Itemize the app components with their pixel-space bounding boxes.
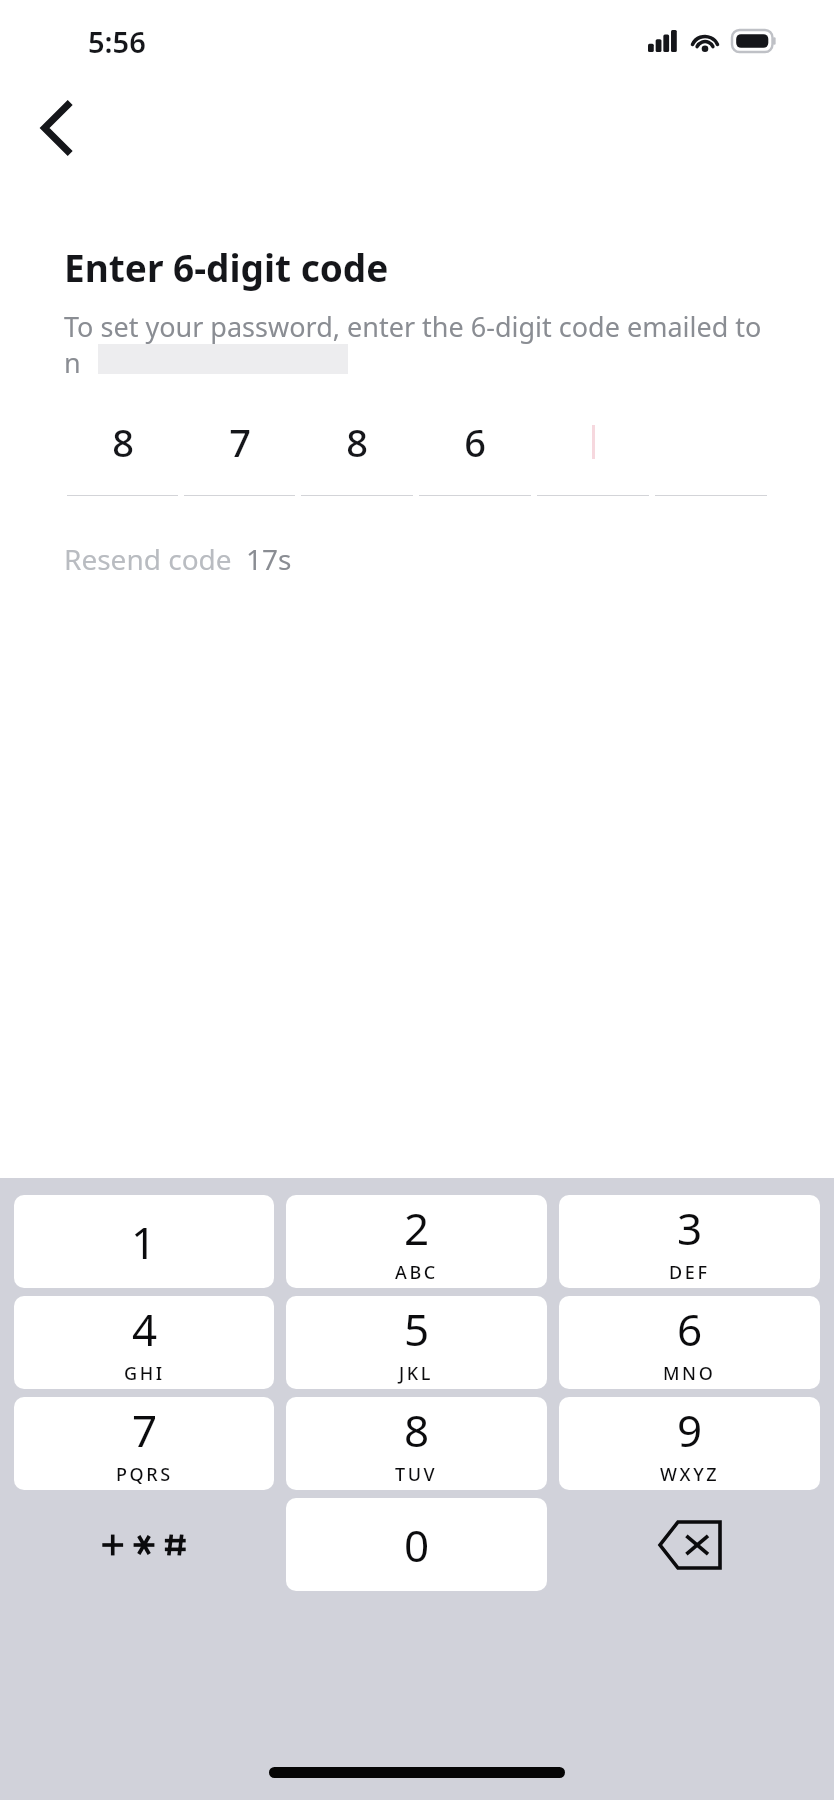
staticText: 0 [404, 1515, 430, 1575]
button[interactable]: 8 [298, 415, 416, 496]
staticText: 7 [229, 416, 251, 468]
staticText: PQRS [116, 1462, 173, 1487]
staticText: 8 [404, 1400, 430, 1460]
button[interactable] [652, 415, 770, 496]
staticText: 8 [112, 416, 134, 468]
button[interactable]: 8 [286, 1397, 547, 1490]
button[interactable]: 8 [64, 415, 181, 496]
staticText: 2 [404, 1198, 430, 1258]
staticText: GHI [124, 1361, 165, 1386]
staticText: JKL [399, 1361, 434, 1386]
button[interactable]: Back [20, 92, 92, 164]
staticText: 7 [132, 1400, 158, 1460]
staticText: 6 [464, 416, 486, 468]
button[interactable]: Resend code [64, 540, 292, 578]
staticText: 1 [131, 1212, 157, 1272]
staticText: 3 [677, 1198, 703, 1258]
staticText: Enter 6-digit code [64, 242, 389, 292]
staticText: DEF [669, 1260, 710, 1285]
staticText: Resend code [64, 540, 232, 578]
staticText: MNO [663, 1361, 716, 1386]
staticText: To set your password, enter the 6-digit … [64, 308, 770, 381]
staticText: 5 [404, 1299, 430, 1359]
button[interactable]: Symbols [14, 1498, 274, 1591]
staticText: WXYZ [660, 1462, 720, 1487]
staticText: TUV [395, 1462, 438, 1487]
button[interactable]: 7 [14, 1397, 274, 1490]
staticText: 9 [677, 1400, 703, 1460]
staticText: 17s [246, 540, 292, 578]
staticText: 8 [346, 416, 368, 468]
button[interactable]: 6 [559, 1296, 820, 1389]
button[interactable]: 2 [286, 1195, 547, 1288]
button[interactable] [534, 415, 652, 496]
staticText: 5:56 [88, 22, 146, 61]
button[interactable]: 6 [416, 415, 534, 496]
button[interactable]: 7 [181, 415, 298, 496]
staticText: ABC [395, 1260, 438, 1285]
button[interactable]: 1 [14, 1195, 274, 1288]
staticText: 6 [677, 1299, 703, 1359]
button[interactable]: 5 [286, 1296, 547, 1389]
staticText: 4 [132, 1299, 158, 1359]
button[interactable]: 4 [14, 1296, 274, 1389]
button[interactable]: 3 [559, 1195, 820, 1288]
button[interactable]: 9 [559, 1397, 820, 1490]
button[interactable]: 0 [286, 1498, 547, 1591]
button[interactable]: Delete [559, 1498, 820, 1591]
